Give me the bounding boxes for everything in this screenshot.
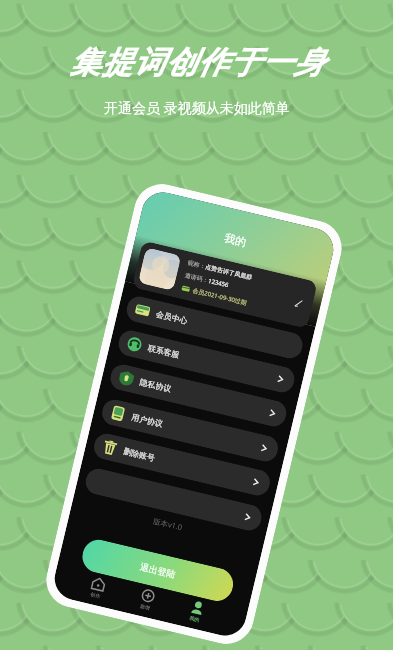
button[interactable]: 退出登陆 xyxy=(79,536,236,604)
button[interactable]: 创作 xyxy=(81,574,113,601)
staticText: 新增 xyxy=(139,603,150,611)
staticText: 删除账号 xyxy=(122,446,156,463)
button[interactable]: 新增 xyxy=(131,586,163,613)
staticText: 版本v1.0 xyxy=(71,496,264,551)
button[interactable]: 会员中心 xyxy=(124,294,305,361)
staticText: 用户协议 xyxy=(130,412,164,429)
staticText: 创作 xyxy=(90,591,101,599)
button[interactable]: 联系客服 xyxy=(116,328,297,395)
staticText: 我的 xyxy=(189,615,200,623)
staticText: 邀请码： xyxy=(184,271,209,284)
staticText: 会员2021-09-30过期 xyxy=(192,286,248,307)
staticText: 点赞告诉了凤凰群 xyxy=(204,263,253,282)
staticText: 退出登陆 xyxy=(139,561,177,580)
staticText: 我的 xyxy=(138,210,332,269)
staticText: 会员中心 xyxy=(155,309,188,326)
button[interactable]: Edit profile xyxy=(291,295,307,311)
staticText: 隐私协议 xyxy=(139,377,172,394)
staticText: 集提词创作于一身 xyxy=(69,43,325,82)
button[interactable]: 我的 xyxy=(180,598,212,625)
button[interactable]: 隐私协议 xyxy=(108,362,289,429)
staticText: 开通会员 录视频从未如此简单 xyxy=(104,98,290,117)
button[interactable]: 删除账号 xyxy=(91,431,272,498)
staticText: 123456 xyxy=(207,277,230,289)
button[interactable]: 昵称： xyxy=(132,240,318,329)
button[interactable]: 用户协议 xyxy=(99,397,281,464)
staticText: 昵称： xyxy=(187,259,206,271)
button[interactable] xyxy=(83,466,264,533)
staticText: 联系客服 xyxy=(147,343,180,360)
